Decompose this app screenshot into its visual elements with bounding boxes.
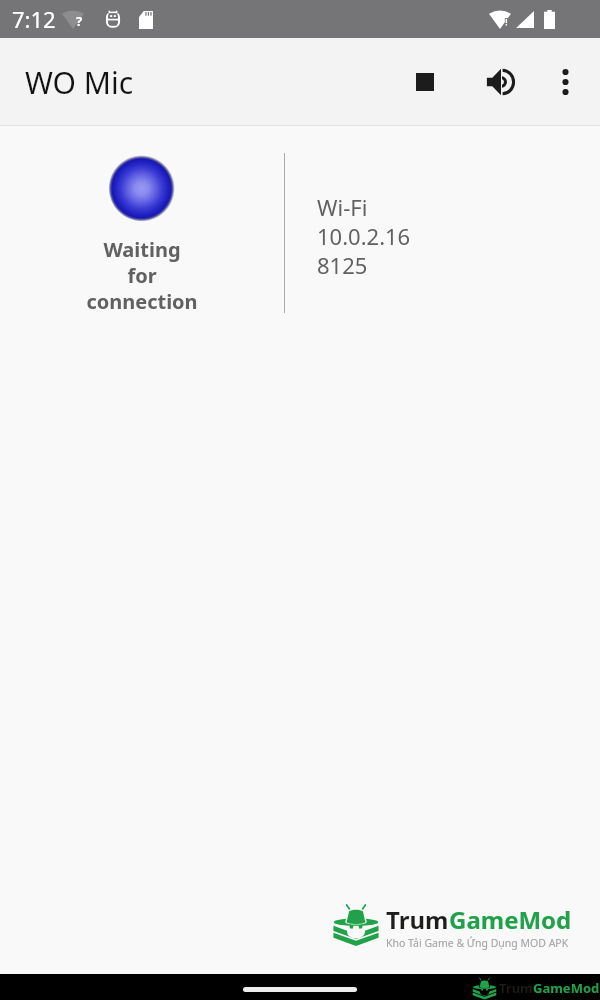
button[interactable]: More options [541,57,590,106]
staticText: Waiting for connection [42,236,242,315]
staticText: Trum [386,903,449,936]
staticText: Kho Tải Game & Ứng Dụng MOD APK [386,936,569,950]
staticText: ? [76,12,83,30]
staticText: 7:12 [12,4,56,34]
staticText: GameMod [449,903,572,936]
staticText: GameMod [533,979,600,997]
button[interactable]: Stop [400,57,449,106]
staticText: WO Mic [25,62,134,103]
staticText: Wi-Fi 10.0.2.16 8125 [317,192,411,281]
button[interactable]: Volume [476,57,525,106]
staticText: Trum [499,979,533,997]
button[interactable]: Connection status: Waiting for connectio… [42,148,242,348]
